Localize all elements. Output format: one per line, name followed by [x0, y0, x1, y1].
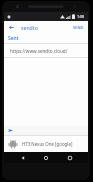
button[interactable]: Back — [18, 153, 28, 163]
button[interactable]: Recent apps — [65, 153, 75, 163]
staticText: sendto — [21, 24, 38, 31]
button[interactable]: Send — [4, 126, 88, 135]
button[interactable]: Home — [41, 153, 51, 163]
staticText: HT3 Nexus One [google] — [22, 141, 73, 147]
staticText: Sent — [8, 35, 19, 42]
staticText: 1:08 — [77, 14, 85, 19]
staticText: SEND — [73, 25, 84, 30]
button[interactable]: https://www.sendto.cloud/ — [4, 44, 88, 57]
staticText: https://www.sendto.cloud/ — [10, 48, 68, 54]
button[interactable]: Back — [7, 23, 16, 32]
button[interactable]: SEND — [72, 23, 85, 32]
button[interactable]: HT3 Nexus One [google] — [4, 136, 88, 152]
